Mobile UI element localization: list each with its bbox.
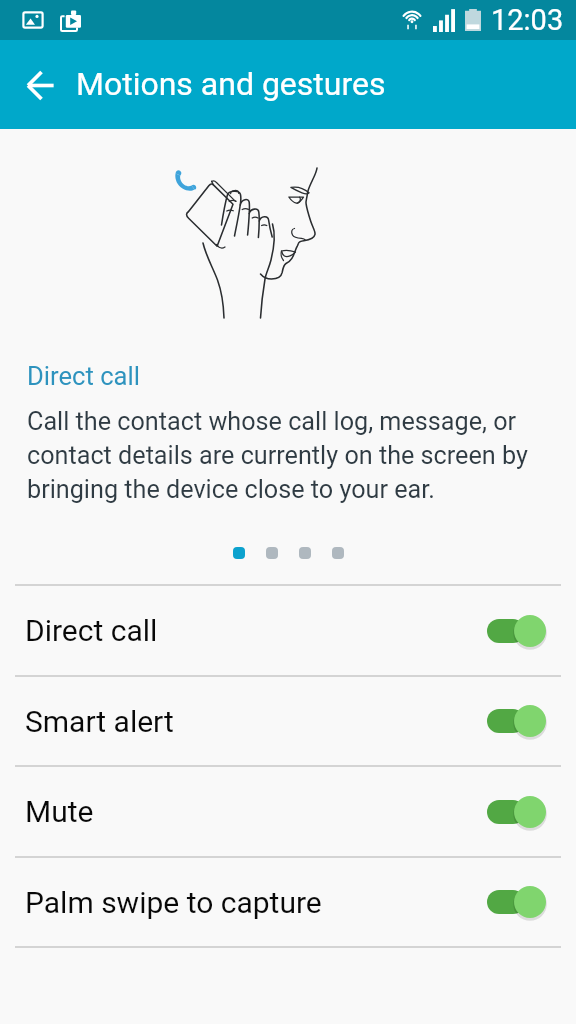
button[interactable]: Page 3 [299, 547, 311, 559]
staticText: Palm swipe to capture [25, 885, 322, 920]
staticText: 12:03 [491, 3, 564, 37]
button[interactable]: Page 4 [332, 547, 344, 559]
staticText: Mute [25, 794, 94, 829]
staticText: Motions and gestures [76, 65, 386, 103]
button[interactable]: Navigate up [0, 41, 84, 129]
staticText: Call the contact whose call log, message… [27, 407, 548, 504]
button[interactable]: Direct call [0, 586, 576, 675]
button[interactable]: Smart alert [0, 677, 576, 765]
staticText: Direct call [27, 361, 140, 391]
button[interactable]: Mute [0, 767, 576, 856]
button[interactable]: Page 1 [233, 547, 245, 559]
staticText: Smart alert [25, 704, 174, 739]
staticText: Direct call [25, 613, 158, 648]
button[interactable]: Page 2 [266, 547, 278, 559]
button[interactable]: Palm swipe to capture [0, 858, 576, 946]
